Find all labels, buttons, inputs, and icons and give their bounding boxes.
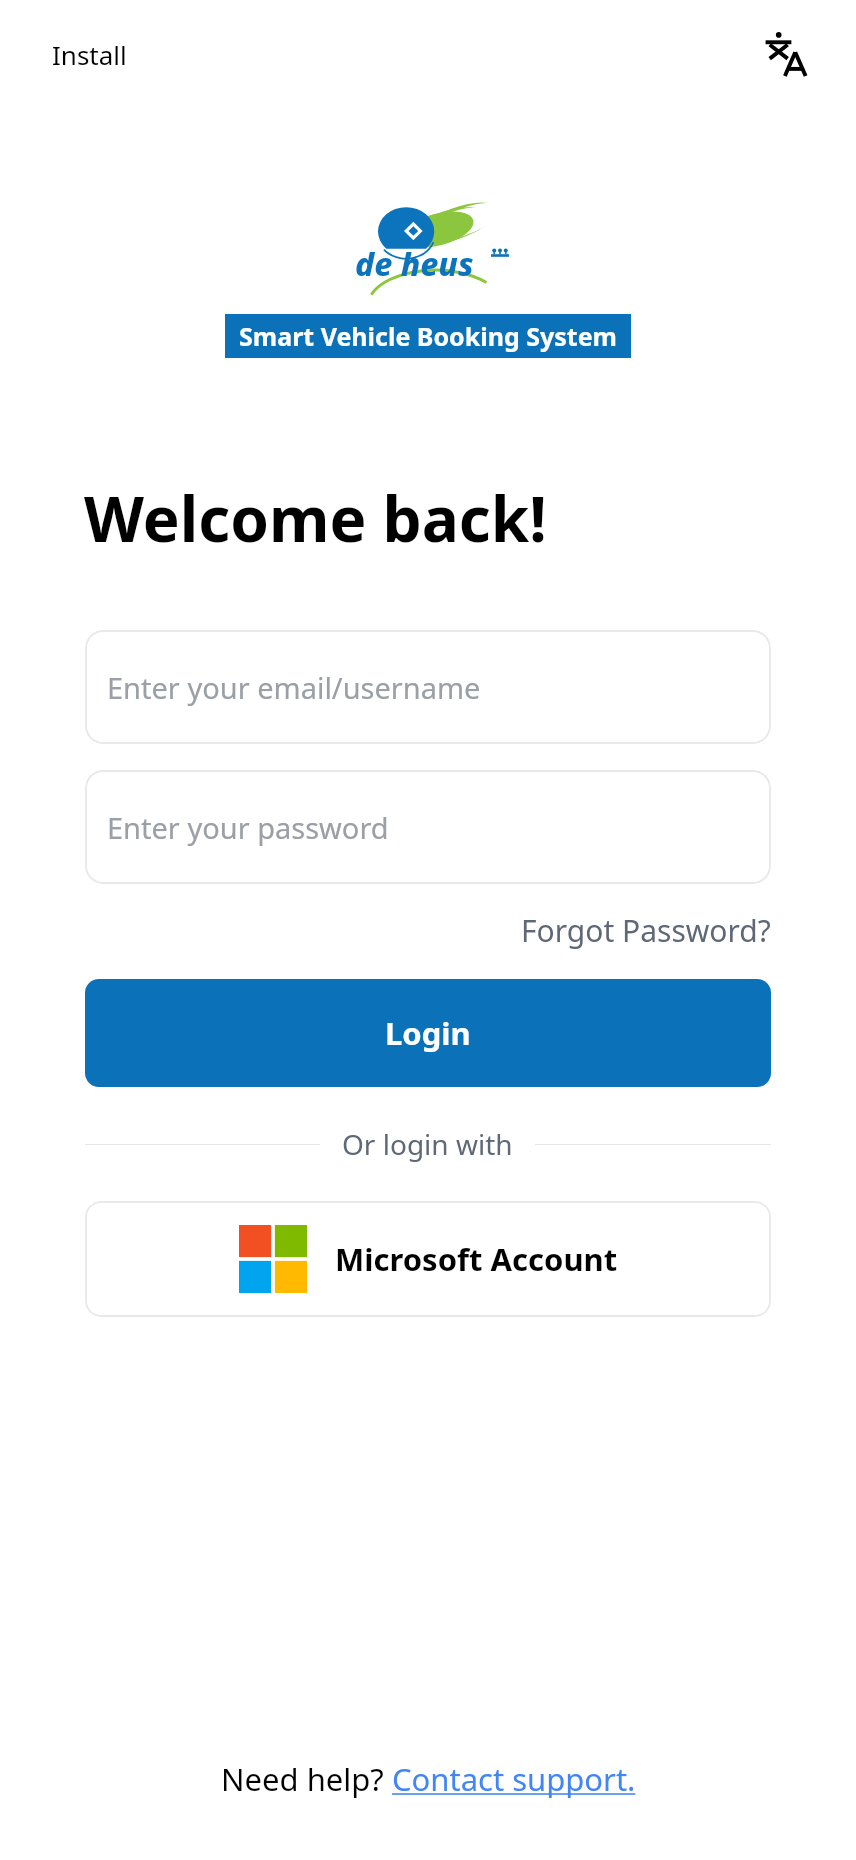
button[interactable]: Contact support.: [392, 1758, 636, 1800]
staticText: Smart Vehicle Booking System: [239, 319, 617, 353]
staticText: de heus: [355, 242, 474, 286]
staticText: Or login with: [342, 1125, 513, 1163]
staticText: Microsoft Account: [335, 1238, 618, 1280]
button[interactable]: Translate page: [752, 22, 816, 86]
button[interactable]: Enter your email/username: [85, 630, 771, 744]
staticText: Login: [385, 1012, 471, 1054]
staticText: Contact support.: [392, 1758, 636, 1800]
staticText: Enter your password: [107, 808, 389, 847]
button[interactable]: Login: [85, 979, 771, 1087]
staticText: Need help?: [221, 1758, 392, 1800]
button[interactable]: Microsoft Account: [85, 1201, 771, 1317]
button[interactable]: Enter your password: [85, 770, 771, 884]
staticText: Welcome back!: [84, 476, 547, 560]
button[interactable]: Forgot Password?: [521, 910, 856, 951]
button[interactable]: Install: [52, 37, 127, 72]
staticText: Forgot Password?: [521, 910, 771, 951]
staticText: Enter your email/username: [107, 668, 481, 707]
